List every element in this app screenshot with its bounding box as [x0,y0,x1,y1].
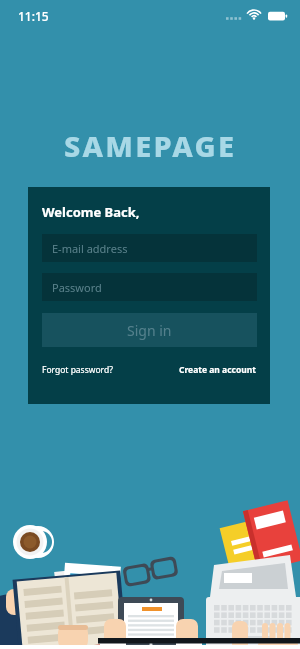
button[interactable]: Sign in [42,313,257,347]
staticText: 11:15 [18,8,49,24]
button[interactable]: E-mail address [42,234,257,262]
staticText: E-mail address [52,241,128,256]
button[interactable]: Forgot password? [42,364,113,376]
staticText: SAMEPAGE [64,126,237,165]
staticText: Sign in [127,321,172,340]
staticText: Forgot password? [42,364,113,376]
staticText: Create an account [179,364,256,376]
button[interactable]: Password [42,273,257,301]
button[interactable]: Create an account [179,364,256,376]
staticText: Welcome Back, [42,203,140,221]
staticText: Password [52,280,102,295]
